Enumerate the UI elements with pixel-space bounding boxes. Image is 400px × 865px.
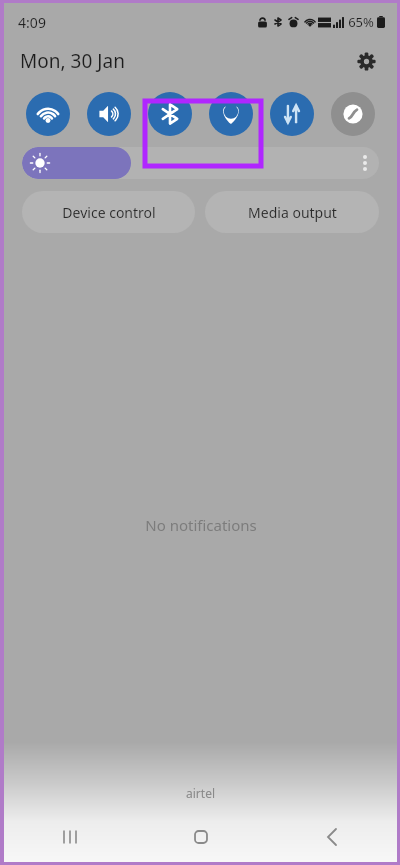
button[interactable]: Back: [266, 812, 397, 862]
staticText: 65%: [348, 13, 374, 31]
staticText: airtel: [186, 785, 215, 801]
button[interactable]: Shazam: [331, 92, 375, 136]
button[interactable]: Sound: [87, 92, 131, 136]
button[interactable]: Wi-Fi: [26, 92, 70, 136]
staticText: No notifications: [145, 515, 257, 535]
button[interactable]: Bluetooth: [148, 92, 192, 136]
button[interactable]: Media output: [205, 191, 379, 233]
button[interactable]: Home: [135, 812, 266, 862]
button[interactable]: Brightness: [22, 147, 379, 179]
staticText: Media output: [248, 203, 337, 222]
button[interactable]: Mobile data: [270, 92, 314, 136]
staticText: Device control: [62, 203, 156, 222]
staticText: Mon, 30 Jan: [20, 48, 125, 74]
button[interactable]: Recents: [4, 812, 135, 862]
button[interactable]: Settings: [349, 44, 383, 78]
staticText: 4:09: [18, 13, 46, 32]
button[interactable]: Device control: [22, 191, 195, 233]
button[interactable]: Location: [209, 92, 253, 136]
